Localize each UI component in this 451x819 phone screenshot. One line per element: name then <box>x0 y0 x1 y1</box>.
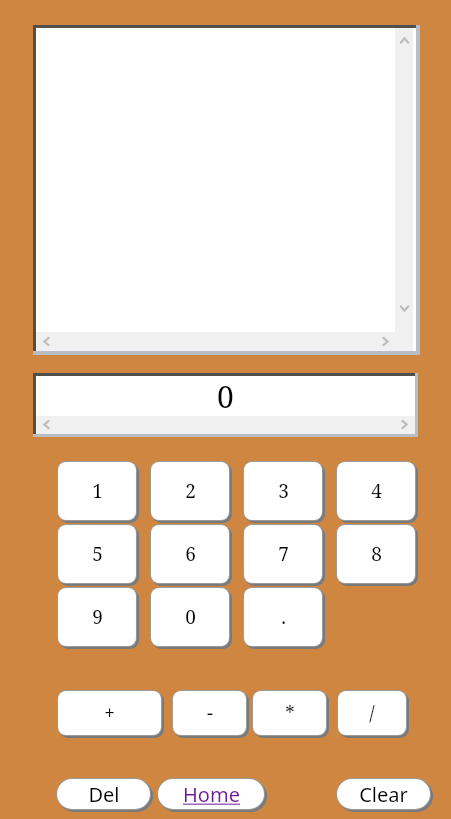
button[interactable]: 6 <box>150 524 230 584</box>
button[interactable]: 9 <box>57 587 137 647</box>
staticText: 0 <box>217 376 234 416</box>
staticText: . <box>281 604 286 630</box>
staticText: * <box>285 700 295 726</box>
staticText: 4 <box>371 478 382 504</box>
staticText: 3 <box>278 478 289 504</box>
button[interactable]: 5 <box>57 524 137 584</box>
staticText: 0 <box>185 604 196 630</box>
button[interactable]: + <box>57 690 162 736</box>
staticText: 9 <box>92 604 103 630</box>
button[interactable]: * <box>252 690 327 736</box>
button[interactable]: . <box>243 587 323 647</box>
button[interactable]: / <box>337 690 407 736</box>
staticText: Home <box>183 781 240 808</box>
button[interactable]: - <box>172 690 247 736</box>
button[interactable]: 2 <box>150 461 230 521</box>
staticText: / <box>369 700 375 726</box>
button[interactable]: 8 <box>336 524 416 584</box>
staticText: 1 <box>92 478 103 504</box>
button[interactable]: Del <box>56 778 151 810</box>
staticText: - <box>207 700 213 726</box>
staticText: 5 <box>92 541 103 567</box>
button[interactable]: 1 <box>57 461 137 521</box>
button[interactable]: 7 <box>243 524 323 584</box>
staticText: Clear <box>359 781 408 808</box>
button[interactable]: Clear <box>336 778 431 810</box>
button[interactable]: 3 <box>243 461 323 521</box>
staticText: 8 <box>371 541 382 567</box>
staticText: Del <box>88 781 120 808</box>
staticText: 7 <box>278 541 289 567</box>
staticText: 2 <box>185 478 196 504</box>
staticText: + <box>104 700 115 726</box>
button[interactable]: 4 <box>336 461 416 521</box>
button[interactable]: 0 <box>150 587 230 647</box>
staticText: 6 <box>185 541 196 567</box>
button[interactable]: Home <box>157 778 265 810</box>
